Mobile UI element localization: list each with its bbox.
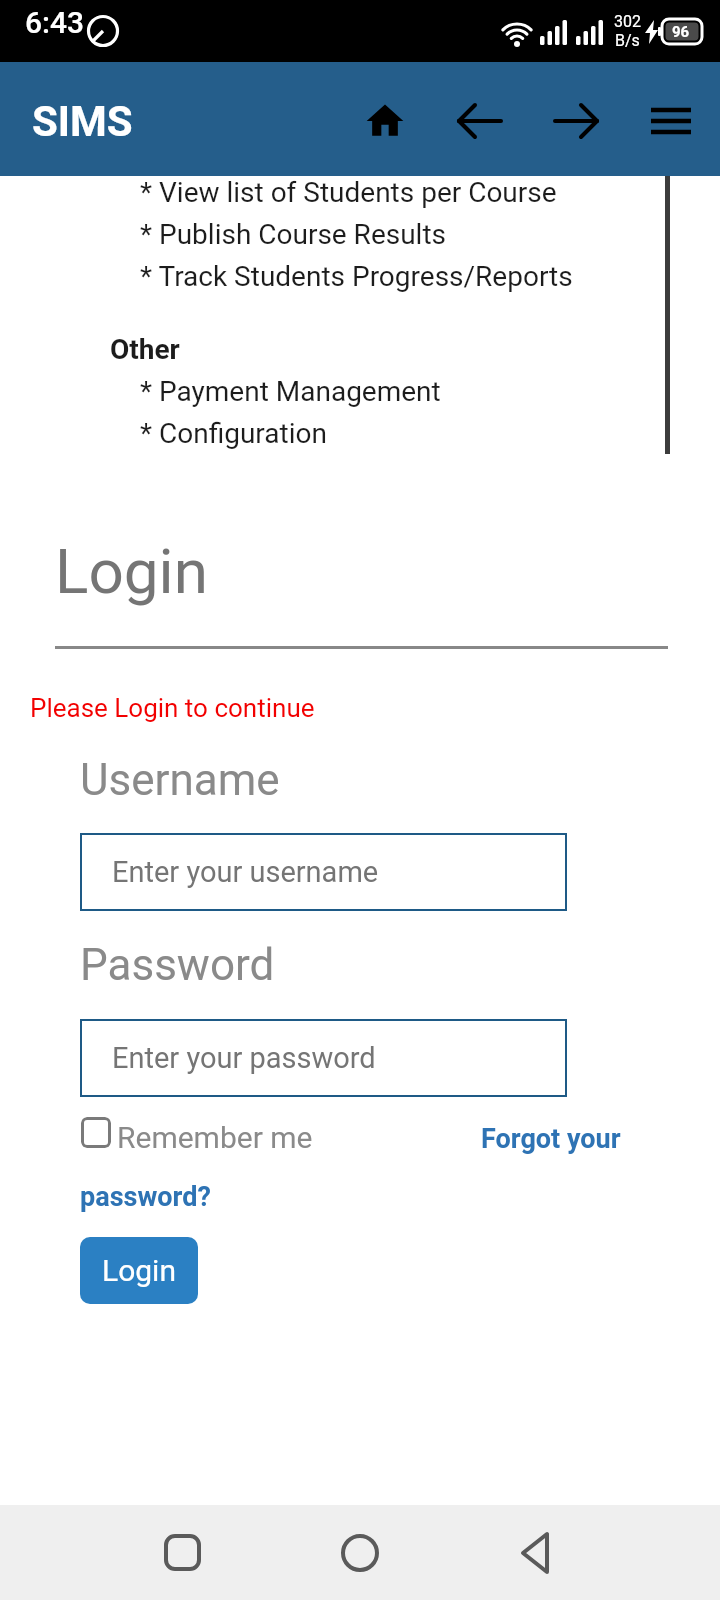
staticText: Login <box>102 1253 176 1288</box>
button[interactable] <box>511 1528 561 1578</box>
staticText: Other <box>110 333 180 366</box>
staticText: password? <box>80 1181 211 1213</box>
staticText: Username <box>80 754 280 806</box>
staticText: SIMS <box>32 97 133 146</box>
button[interactable] <box>360 94 410 148</box>
staticText: * View list of Students per Course <box>140 176 557 209</box>
staticText: 302 <box>614 12 641 31</box>
staticText: 6:43 <box>25 5 85 40</box>
staticText: 96 <box>672 23 690 41</box>
staticText: Enter your password <box>112 1041 376 1075</box>
staticText: Password <box>80 939 275 991</box>
staticText: * Publish Course Results <box>140 218 447 251</box>
staticText: Forgot your <box>481 1123 621 1155</box>
staticText: Enter your username <box>112 855 379 889</box>
staticText: Please Login to continue <box>30 693 315 723</box>
button[interactable] <box>158 1528 208 1578</box>
staticText: Login <box>55 535 208 608</box>
button[interactable]: Enter your username <box>80 833 567 911</box>
button[interactable] <box>648 94 698 148</box>
button[interactable] <box>455 94 505 148</box>
button[interactable] <box>81 1117 111 1148</box>
staticText: * Track Students Progress/Reports <box>140 260 573 293</box>
staticText: Remember me <box>117 1120 313 1155</box>
button[interactable]: Forgot your <box>481 1118 681 1160</box>
staticText: * Configuration <box>140 417 327 450</box>
button[interactable]: Enter your password <box>80 1019 567 1097</box>
button[interactable]: Login <box>80 1237 198 1304</box>
staticText: * Payment Management <box>140 375 441 408</box>
button[interactable] <box>335 1528 385 1578</box>
button[interactable]: password? <box>80 1176 280 1218</box>
staticText: B/s <box>615 31 640 50</box>
button[interactable] <box>551 94 601 148</box>
